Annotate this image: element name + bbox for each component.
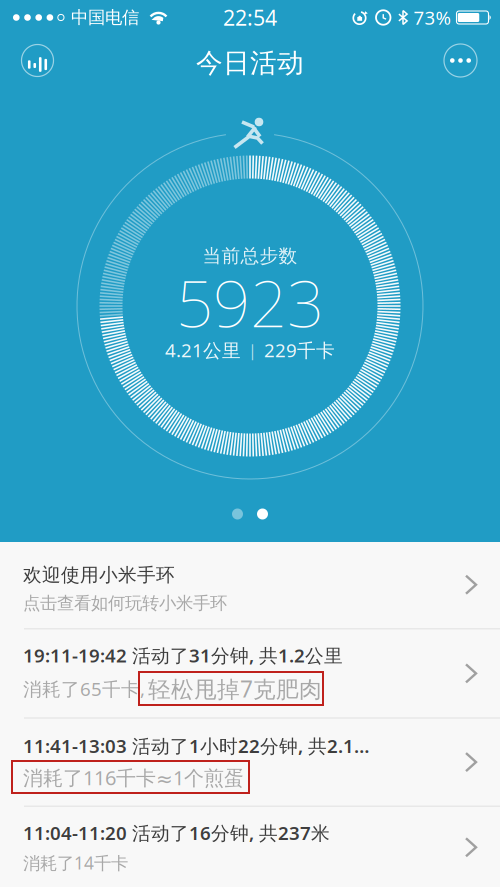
button[interactable]: 统计 xyxy=(17,40,57,80)
staticText: 11:04-11:20 活动了16分钟, 共237米 xyxy=(23,820,330,845)
staticText: 19:11-19:42 活动了31分钟, 共1.2公里 xyxy=(23,643,343,668)
staticText: 229千卡 xyxy=(264,338,335,362)
staticText: 73% xyxy=(413,5,451,30)
button[interactable]: 11:41-13:03 活动了1小时22分钟, 共2.1… xyxy=(0,719,500,806)
staticText: 点击查看如何玩转小米手环 xyxy=(23,592,227,614)
button[interactable]: 19:11-19:42 活动了31分钟, 共1.2公里 xyxy=(0,629,500,717)
staticText: 消耗了65千卡, xyxy=(23,676,145,701)
staticText: 欢迎使用小米手环 xyxy=(23,564,175,586)
staticText: 5923 xyxy=(176,259,324,345)
staticText: 消耗了116千卡≈1个煎蛋 xyxy=(23,764,244,791)
staticText: 消耗了14千卡 xyxy=(23,851,128,874)
button[interactable]: 更多 xyxy=(440,40,480,80)
button[interactable]: 欢迎使用小米手环 xyxy=(0,541,500,628)
staticText: 当前总步数 xyxy=(202,244,297,267)
staticText: 4.21公里 xyxy=(165,338,241,362)
staticText: | xyxy=(248,339,257,361)
staticText: 中国电信 xyxy=(71,7,139,28)
button[interactable]: 11:04-11:20 活动了16分钟, 共237米 xyxy=(0,807,500,887)
staticText: 11:41-13:03 活动了1小时22分钟, 共2.1… xyxy=(23,733,370,758)
staticText: 轻松甩掉7克肥肉 xyxy=(148,674,322,704)
staticText: 22:54 xyxy=(223,3,277,32)
staticText: 今日活动 xyxy=(196,47,304,79)
